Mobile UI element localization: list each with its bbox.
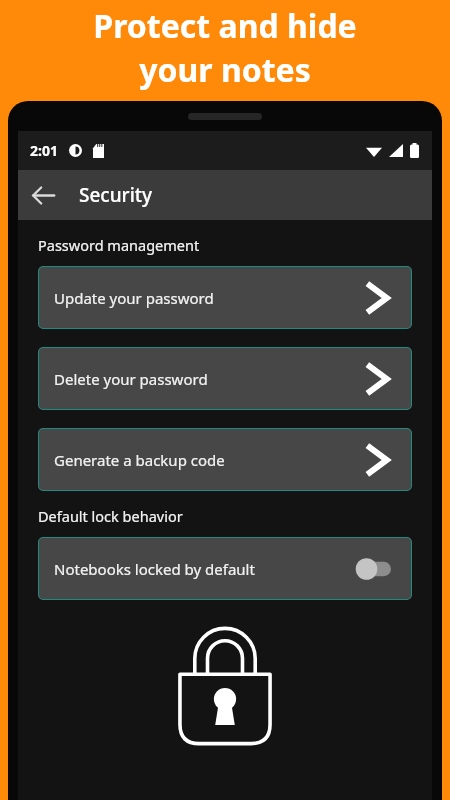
- staticText: Delete your password: [54, 369, 208, 389]
- staticText: Generate a backup code: [54, 450, 225, 470]
- staticText: Default lock behavior: [38, 506, 183, 526]
- staticText: Update your password: [54, 288, 214, 308]
- staticText: your notes: [139, 48, 311, 92]
- staticText: Notebooks locked by default: [54, 559, 255, 579]
- button[interactable]: Delete your password: [38, 347, 412, 410]
- staticText: Security: [79, 182, 153, 208]
- staticText: Password management: [38, 235, 200, 255]
- button[interactable]: Back: [18, 170, 68, 220]
- staticText: Protect and hide: [93, 4, 357, 48]
- button[interactable]: Update your password: [38, 266, 412, 329]
- other: Notebooks locked by default: [355, 557, 395, 581]
- button[interactable]: Notebooks locked by default: [38, 537, 412, 600]
- button[interactable]: Generate a backup code: [38, 428, 412, 491]
- staticText: 2:01: [30, 141, 58, 160]
